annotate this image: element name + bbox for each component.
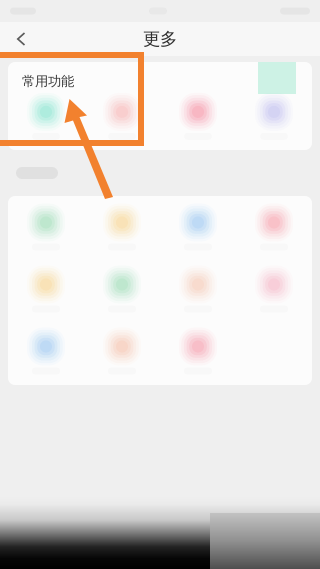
button[interactable]: Feature — [160, 89, 236, 143]
button[interactable]: Feature — [8, 320, 84, 382]
button[interactable]: Feature — [160, 258, 236, 320]
button[interactable]: Feature — [236, 258, 312, 320]
button[interactable]: Feature — [236, 89, 312, 143]
button[interactable]: Feature — [8, 89, 84, 143]
staticText: 更多 — [143, 28, 177, 50]
button[interactable]: Feature — [160, 320, 236, 382]
staticText: 常用功能 — [22, 73, 74, 89]
button[interactable]: Feature — [84, 196, 160, 258]
button[interactable]: Feature — [84, 89, 160, 143]
button[interactable]: Feature — [84, 258, 160, 320]
button[interactable]: Feature — [8, 196, 84, 258]
button[interactable]: Feature — [84, 320, 160, 382]
button[interactable]: Back — [4, 23, 38, 55]
button[interactable]: Feature — [160, 196, 236, 258]
button[interactable]: Feature — [236, 196, 312, 258]
button[interactable]: Feature — [8, 258, 84, 320]
